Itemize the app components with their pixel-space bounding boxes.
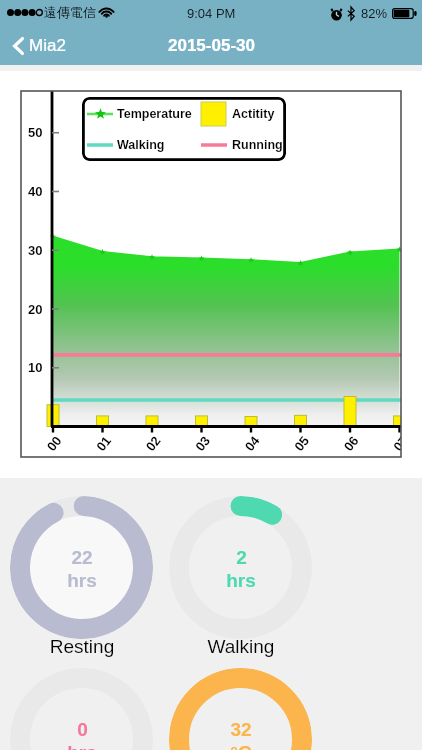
other: Bluetooth xyxy=(347,7,355,20)
staticText: Temperature xyxy=(117,107,192,121)
staticText: hrs xyxy=(67,742,97,750)
staticText: 82% xyxy=(361,6,388,21)
button[interactable]: 32 xyxy=(169,668,312,750)
button[interactable]: 22 xyxy=(10,496,153,639)
other: Wi-Fi xyxy=(99,6,114,18)
staticText: Mia2 xyxy=(29,36,66,55)
staticText: °C xyxy=(230,742,252,750)
other: Back xyxy=(13,37,24,55)
staticText: 22 xyxy=(71,547,93,568)
staticText: Actitity xyxy=(232,107,275,121)
staticText: 2015-05-30 xyxy=(168,36,255,55)
staticText: 0 xyxy=(77,719,88,740)
staticText: Resting xyxy=(22,636,142,657)
button[interactable]: 2 xyxy=(169,496,312,639)
button[interactable]: Back xyxy=(0,32,76,59)
staticText: Walking xyxy=(181,636,301,657)
staticText: Walking xyxy=(117,138,165,152)
staticText: hrs xyxy=(67,570,97,591)
staticText: 9:04 PM xyxy=(187,6,236,21)
other: Alarm xyxy=(330,7,343,21)
staticText: Running xyxy=(232,138,283,152)
button[interactable]: 0 xyxy=(10,668,153,750)
staticText: 32 xyxy=(230,719,252,740)
staticText: 遠傳電信 xyxy=(44,4,96,20)
staticText: hrs xyxy=(226,570,256,591)
other: Battery xyxy=(392,8,417,19)
staticText: 2 xyxy=(236,547,247,568)
